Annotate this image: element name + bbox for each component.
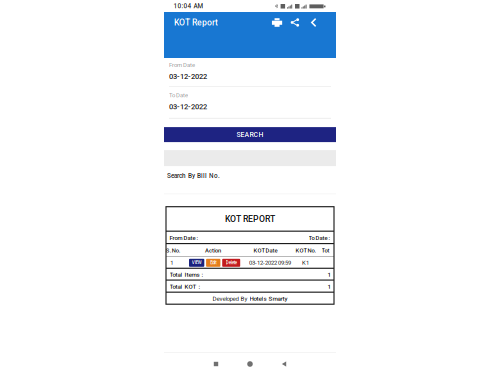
staticText: From Date: [169, 62, 195, 68]
staticText: 1: [327, 271, 330, 278]
staticText: 1: [327, 283, 330, 290]
staticText: Total KOT :: [169, 283, 200, 290]
staticText: From Date :: [169, 234, 198, 241]
button[interactable]: Delete: [222, 259, 240, 267]
staticText: Hotels Smarty: [249, 295, 287, 302]
button[interactable]: Print: [270, 15, 284, 29]
staticText: K1: [302, 259, 309, 266]
button[interactable]: Edit: [206, 259, 220, 267]
button[interactable]: SEARCH: [164, 127, 336, 142]
staticText: 03-12-2022: [169, 72, 207, 81]
staticText: 10:04 AM: [173, 2, 203, 10]
button[interactable]: Share: [289, 15, 302, 29]
staticText: Action: [205, 247, 221, 254]
button[interactable]: From Date: [164, 58, 336, 87]
staticText: KOT No.: [295, 247, 316, 254]
staticText: Tot: [321, 247, 329, 254]
button[interactable]: To Date: [164, 87, 336, 119]
button[interactable]: Recent apps: [199, 356, 233, 372]
staticText: To Date :: [308, 234, 330, 241]
staticText: Edit: [210, 260, 216, 265]
staticText: 03-12-2022: [169, 102, 207, 111]
staticText: VIEW: [192, 260, 202, 265]
staticText: 1: [170, 259, 173, 266]
staticText: Search By Bill No.: [167, 172, 220, 180]
button[interactable]: Home: [233, 356, 267, 372]
staticText: Delete: [226, 260, 237, 265]
staticText: SEARCH: [236, 130, 263, 139]
staticText: To Date: [169, 92, 188, 99]
button[interactable]: Back: [308, 15, 319, 29]
staticText: S.No.: [166, 247, 181, 254]
staticText: 03-12-2022 09:59: [249, 259, 291, 266]
staticText: KOT Date: [253, 247, 277, 254]
button[interactable]: VIEW: [189, 259, 204, 267]
staticText: Total Items :: [169, 271, 203, 278]
staticText: KOT Report: [174, 17, 218, 28]
staticText: KOT REPORT: [225, 214, 275, 224]
staticText: Developed By: [212, 295, 249, 302]
button[interactable]: Back: [267, 356, 301, 372]
